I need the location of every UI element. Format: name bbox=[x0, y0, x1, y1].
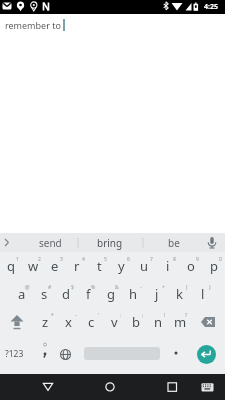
staticText: remember to bbox=[5, 19, 61, 31]
staticText: ? bbox=[185, 312, 188, 319]
button[interactable]: k bbox=[168, 280, 191, 308]
staticText: @ bbox=[25, 284, 30, 291]
button[interactable]: q bbox=[0, 252, 22, 280]
staticText: t bbox=[97, 257, 102, 275]
button[interactable] bbox=[162, 377, 182, 397]
staticText: be bbox=[168, 236, 180, 250]
staticText: 7 bbox=[150, 256, 153, 263]
staticText: send bbox=[39, 236, 62, 250]
button[interactable] bbox=[191, 308, 225, 336]
staticText: s bbox=[41, 285, 48, 303]
button[interactable]: ?123 bbox=[1, 344, 27, 364]
button[interactable]: h bbox=[122, 280, 145, 308]
button[interactable] bbox=[36, 342, 54, 362]
staticText: ! bbox=[164, 312, 166, 319]
staticText: v bbox=[111, 313, 118, 331]
button[interactable] bbox=[38, 377, 58, 397]
staticText: % bbox=[91, 284, 96, 291]
button[interactable]: remember to bbox=[0, 14, 225, 233]
staticText: o bbox=[187, 257, 195, 275]
staticText: 8 bbox=[173, 256, 176, 263]
staticText: y bbox=[118, 257, 125, 275]
staticText: k bbox=[176, 285, 183, 303]
button[interactable]: t bbox=[88, 252, 110, 280]
button[interactable]: i bbox=[156, 252, 179, 280]
staticText: 5 bbox=[104, 256, 107, 263]
staticText: b bbox=[132, 313, 140, 331]
staticText: i bbox=[166, 257, 170, 275]
button[interactable]: y bbox=[110, 252, 133, 280]
button[interactable]: n bbox=[147, 308, 169, 336]
staticText: 1 bbox=[16, 256, 19, 263]
staticText: * bbox=[51, 312, 54, 319]
staticText: d bbox=[62, 285, 70, 303]
button[interactable]: l bbox=[191, 280, 214, 308]
staticText: 3 bbox=[60, 256, 63, 263]
staticText: r bbox=[74, 257, 80, 275]
staticText: + bbox=[162, 284, 165, 291]
button[interactable]: b bbox=[125, 308, 147, 336]
staticText: 6 bbox=[127, 256, 130, 263]
button[interactable]: w bbox=[22, 252, 44, 280]
button[interactable]: x bbox=[57, 308, 80, 336]
staticText: c bbox=[88, 313, 95, 331]
button[interactable]: f bbox=[77, 280, 99, 308]
staticText: 4 bbox=[82, 256, 85, 263]
button[interactable]: a bbox=[11, 280, 33, 308]
staticText: q bbox=[7, 257, 15, 275]
button[interactable]: m bbox=[169, 308, 191, 336]
button[interactable]: p bbox=[202, 252, 225, 280]
staticText: p bbox=[210, 257, 218, 275]
staticText: ' bbox=[98, 312, 100, 319]
staticText: # bbox=[48, 284, 52, 291]
button[interactable]: r bbox=[66, 252, 88, 280]
staticText: m bbox=[174, 313, 187, 331]
staticText: x bbox=[65, 313, 72, 331]
button[interactable]: g bbox=[99, 280, 122, 308]
staticText: - bbox=[140, 284, 142, 291]
staticText: 4:25 bbox=[204, 2, 218, 12]
staticText: u bbox=[140, 257, 149, 275]
staticText: : bbox=[120, 312, 122, 319]
button[interactable]: e bbox=[44, 252, 66, 280]
staticText: 2 bbox=[38, 256, 41, 263]
button[interactable]: send bbox=[28, 233, 72, 252]
staticText: bring bbox=[97, 236, 123, 250]
button[interactable]: bring bbox=[88, 233, 132, 252]
button[interactable] bbox=[197, 345, 216, 364]
staticText: - bbox=[75, 312, 77, 319]
button[interactable]: j bbox=[145, 280, 168, 308]
staticText: g bbox=[107, 285, 115, 303]
staticText: f bbox=[86, 285, 91, 303]
staticText: e bbox=[51, 257, 59, 275]
button[interactable]: u bbox=[133, 252, 156, 280]
staticText: a bbox=[18, 285, 26, 303]
button[interactable]: o bbox=[179, 252, 202, 280]
staticText: & bbox=[115, 284, 119, 291]
staticText: ?123 bbox=[5, 348, 24, 360]
staticText: n bbox=[154, 313, 163, 331]
button[interactable]: s bbox=[33, 280, 55, 308]
staticText: h bbox=[129, 285, 138, 303]
button[interactable]: be bbox=[152, 233, 196, 252]
staticText: z bbox=[42, 313, 49, 331]
staticText: l bbox=[201, 285, 205, 303]
button[interactable] bbox=[0, 308, 34, 336]
staticText: $ bbox=[71, 284, 74, 291]
staticText: j bbox=[155, 285, 159, 303]
button[interactable] bbox=[56, 344, 74, 364]
staticText: 0 bbox=[219, 256, 222, 263]
button[interactable]: z bbox=[34, 308, 57, 336]
staticText: ; bbox=[142, 312, 144, 319]
staticText: w bbox=[28, 257, 39, 275]
button[interactable]: c bbox=[80, 308, 103, 336]
button[interactable] bbox=[100, 377, 120, 397]
button[interactable] bbox=[197, 377, 217, 397]
staticText: ) bbox=[209, 284, 211, 291]
button[interactable]: d bbox=[55, 280, 77, 308]
staticText: ( bbox=[186, 284, 188, 291]
staticText: 9 bbox=[196, 256, 199, 263]
button[interactable] bbox=[169, 342, 183, 364]
button[interactable]: v bbox=[103, 308, 125, 336]
